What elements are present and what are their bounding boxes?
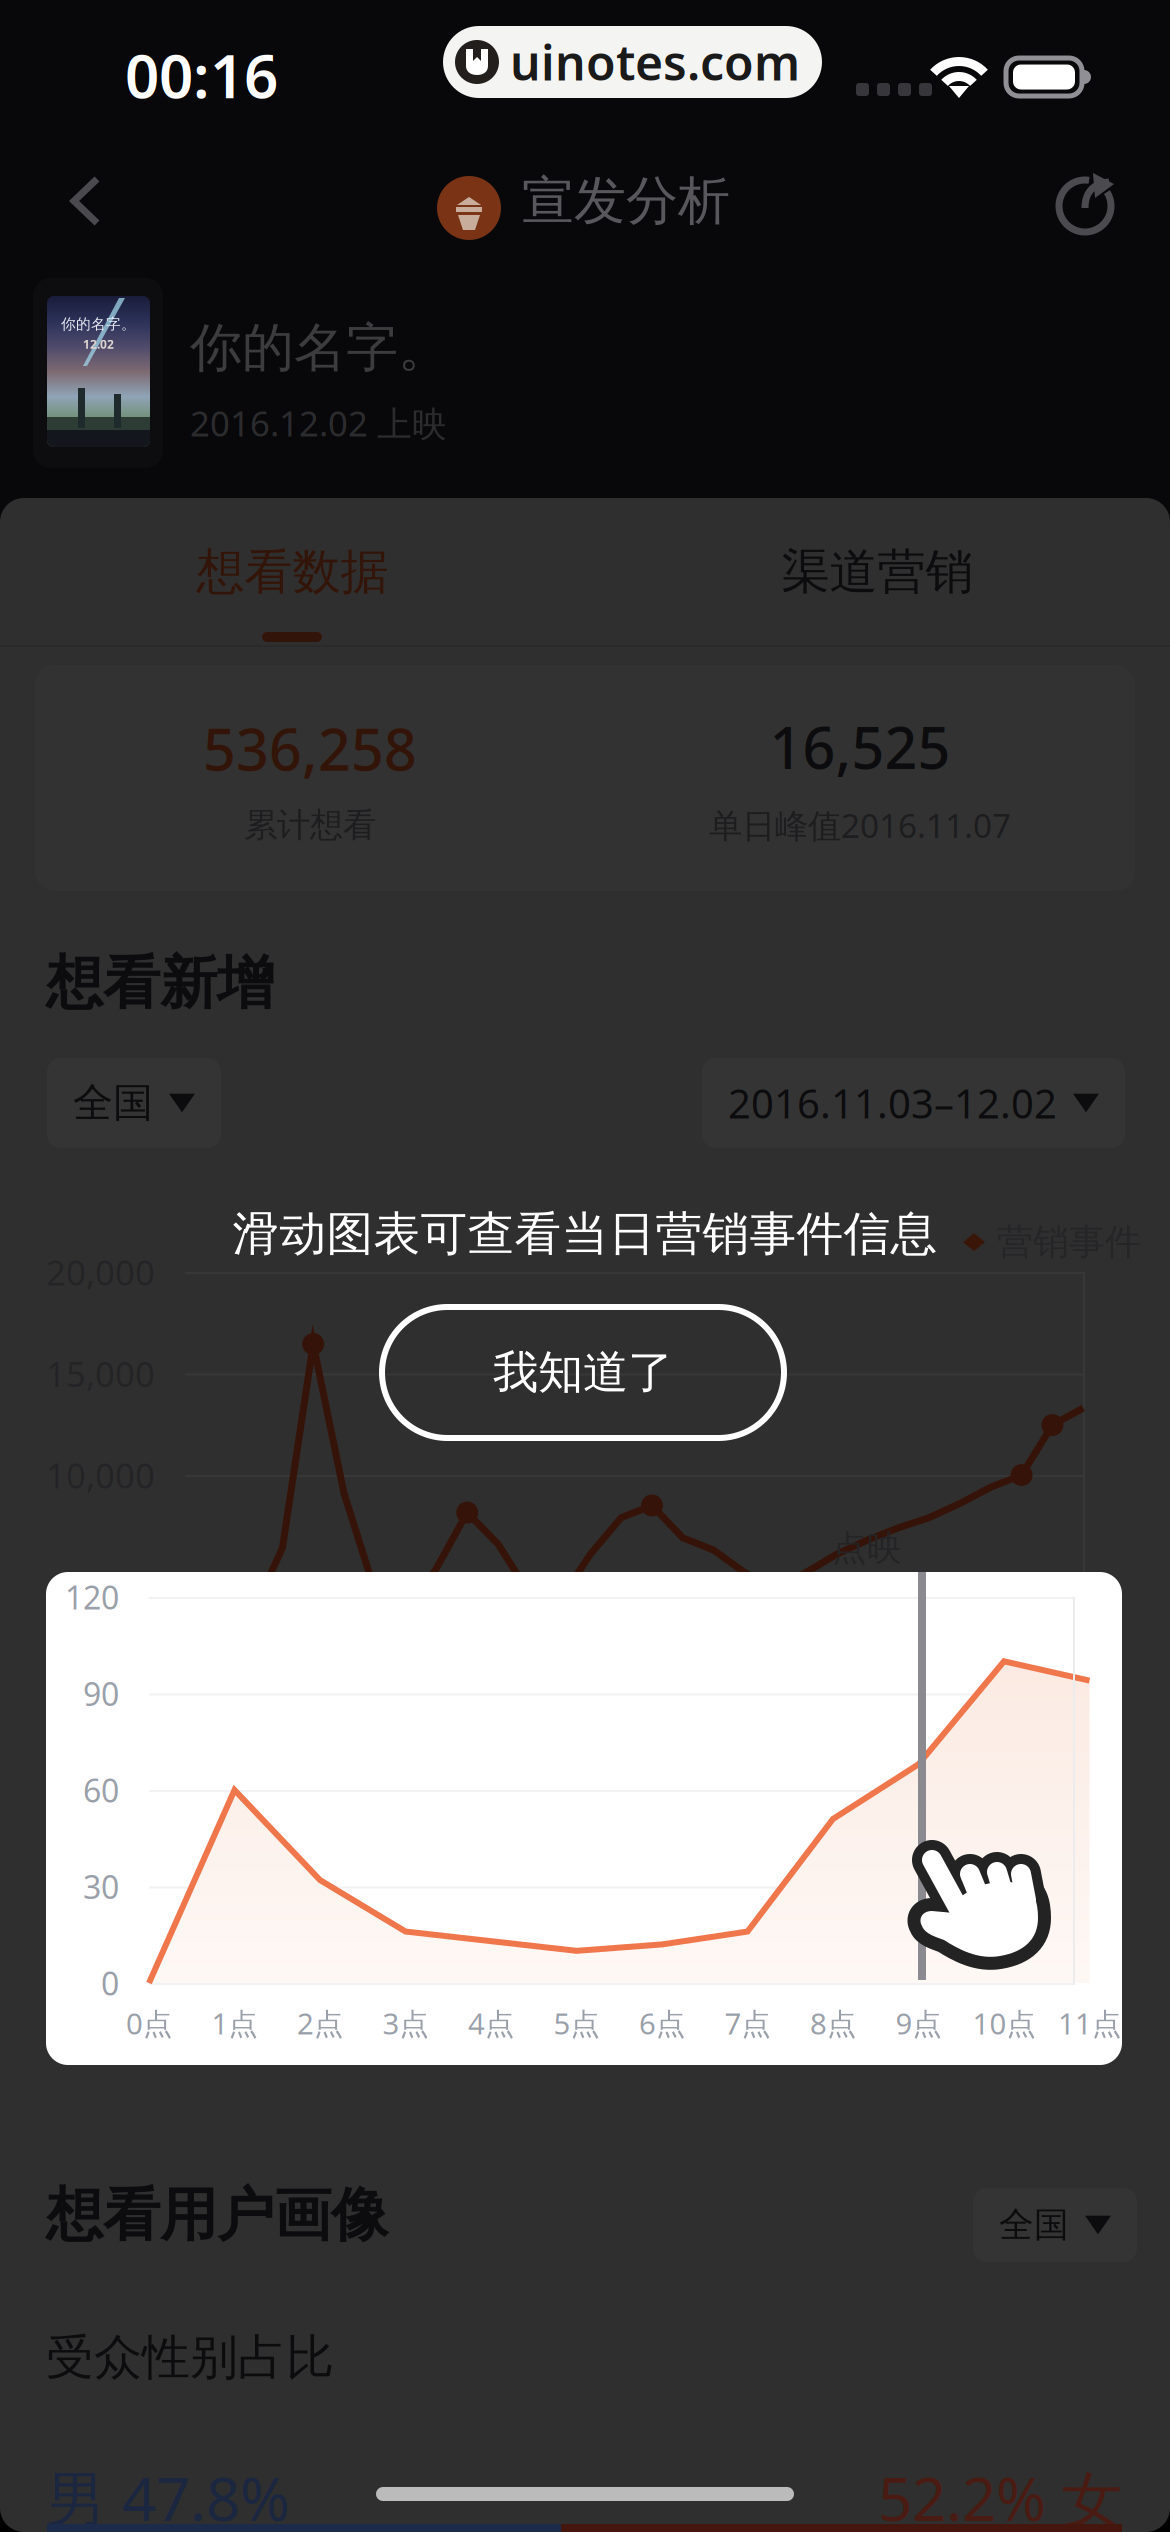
staticText: 7点: [724, 2003, 770, 2042]
staticText: 12.02: [83, 336, 114, 352]
staticText: 营销事件: [997, 1220, 1141, 1264]
staticText: 0点: [126, 2003, 172, 2042]
staticText: 全国: [73, 1078, 153, 1127]
staticText: 你的名字。: [61, 315, 136, 333]
staticText: 8点: [810, 2003, 856, 2042]
staticText: 点映: [832, 1527, 902, 1570]
staticText: 16,525: [769, 709, 950, 785]
staticText: 累计想看: [244, 805, 376, 845]
staticText: 单日峰值2016.11.07: [709, 803, 1011, 847]
staticText: 2016.11.03–12.02: [728, 1076, 1057, 1129]
staticText: 15,000: [46, 1350, 155, 1396]
staticText: 4点: [468, 2003, 514, 2042]
staticText: 30: [83, 1865, 119, 1908]
staticText: 3点: [382, 2003, 428, 2042]
staticText: 20,000: [46, 1249, 155, 1295]
button[interactable]: 全国: [973, 2188, 1137, 2262]
staticText: 宣发分析: [522, 169, 730, 233]
staticText: 2点: [297, 2003, 343, 2042]
staticText: 0: [101, 1962, 119, 2004]
staticText: 受众性别占比: [46, 2328, 334, 2387]
staticText: 120: [65, 1576, 119, 1618]
button[interactable]: 想看数据: [0, 498, 585, 646]
staticText: 你的名字。: [190, 316, 450, 380]
staticText: 1点: [211, 2003, 257, 2042]
staticText: 6点: [639, 2003, 685, 2042]
staticText: 渠道营销: [781, 542, 973, 601]
staticText: uinotes.com: [510, 30, 800, 94]
staticText: 想看新增: [46, 948, 274, 1018]
staticText: 536,258: [203, 710, 417, 787]
button[interactable]: Back: [25, 146, 145, 256]
staticText: 10,000: [46, 1452, 155, 1498]
button[interactable]: 全国: [47, 1058, 221, 1148]
button[interactable]: 渠道营销: [585, 498, 1170, 646]
staticText: 滑动图表可查看当日营销事件信息: [232, 1205, 937, 1263]
staticText: 全国: [999, 2204, 1069, 2246]
staticText: 我知道了: [493, 1345, 673, 1400]
staticText: 60: [83, 1769, 119, 1811]
staticText: 想看数据: [196, 542, 388, 601]
staticText: 11点: [1058, 2003, 1121, 2042]
staticText: 52.2% 女: [878, 2458, 1122, 2532]
staticText: 90: [83, 1672, 119, 1715]
staticText: 想看用户画像: [46, 2180, 388, 2250]
staticText: 00:16: [125, 35, 278, 115]
staticText: 男 47.8%: [46, 2458, 290, 2532]
button[interactable]: 2016.11.03–12.02: [702, 1058, 1125, 1148]
staticText: 5点: [553, 2003, 599, 2042]
button[interactable]: Share: [1026, 149, 1146, 259]
staticText: 10点: [972, 2003, 1035, 2042]
button[interactable]: 我知道了: [382, 1307, 784, 1438]
staticText: 2016.12.02 上映: [190, 400, 447, 446]
staticText: 9点: [895, 2003, 941, 2042]
